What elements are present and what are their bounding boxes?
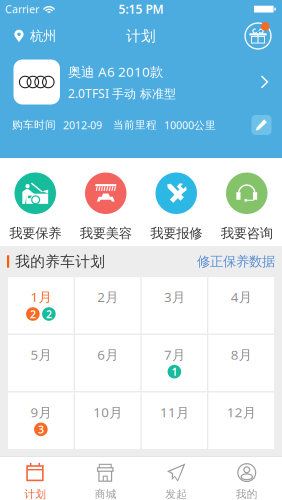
button[interactable]: 我要保养	[0, 158, 70, 246]
button[interactable]: 3月	[141, 277, 207, 334]
button[interactable]: 6月	[75, 335, 141, 391]
staticText: 我要美容	[80, 225, 132, 241]
staticText: 我要报修	[150, 225, 202, 241]
button[interactable]: 9月	[8, 392, 74, 449]
button[interactable]: 我要报修	[141, 158, 211, 246]
button[interactable]: 我要美容	[70, 158, 141, 246]
button[interactable]: 我要咨询	[211, 158, 282, 246]
staticText: 发起	[165, 488, 187, 500]
staticText: 当前里程	[113, 118, 157, 131]
staticText: 购车时间	[12, 118, 56, 131]
staticText: 12月	[227, 403, 256, 421]
staticText: 10月	[93, 403, 122, 421]
button[interactable]: 商城	[70, 457, 141, 500]
staticText: 2012-09	[63, 118, 102, 132]
staticText: 5月	[30, 346, 51, 363]
button[interactable]: 8月	[208, 335, 274, 391]
staticText: 8月	[231, 346, 252, 363]
staticText: 修正保养数据	[197, 253, 275, 270]
button[interactable]: 我的	[211, 457, 282, 500]
staticText: 2月	[97, 288, 118, 306]
button[interactable]: 礼物	[232, 18, 282, 54]
staticText: 1	[171, 365, 177, 379]
button[interactable]: 计划	[0, 457, 70, 500]
button[interactable]: 编辑	[251, 115, 271, 135]
button[interactable]: 10月	[75, 392, 141, 449]
staticText: 2	[46, 307, 52, 321]
staticText: 商城	[95, 488, 117, 500]
button[interactable]: 杭州	[0, 18, 66, 54]
staticText: 计划	[24, 488, 46, 500]
staticText: 我的养车计划	[15, 252, 105, 270]
staticText: 我要咨询	[221, 225, 273, 241]
staticText: 3月	[164, 288, 185, 306]
staticText: 9月	[30, 403, 51, 421]
staticText: 我要保养	[9, 225, 61, 241]
button[interactable]: 2月	[75, 277, 141, 334]
button[interactable]: 修正保养数据	[190, 247, 282, 276]
staticText: 5:15 PM	[118, 1, 163, 17]
button[interactable]: 4月	[208, 277, 274, 334]
staticText: 3	[38, 422, 44, 436]
button[interactable]: 发起	[141, 457, 211, 500]
staticText: 2	[30, 307, 36, 321]
staticText: 10000公里	[164, 118, 216, 132]
staticText: 杭州	[30, 28, 56, 44]
staticText: 4月	[231, 288, 252, 306]
staticText: 计划	[126, 27, 156, 45]
staticText: 奥迪 A6 2010款	[68, 63, 163, 80]
staticText: 7月	[164, 346, 185, 363]
staticText: 11月	[160, 403, 189, 421]
staticText: 1月	[30, 288, 51, 306]
staticText: 6月	[97, 346, 118, 363]
button[interactable]: 7月	[141, 335, 207, 391]
button[interactable]: 11月	[141, 392, 207, 449]
staticText: 我的	[236, 488, 258, 500]
staticText: Carrier	[5, 2, 39, 16]
button[interactable]: 1月	[8, 277, 74, 334]
button[interactable]: 12月	[208, 392, 274, 449]
button[interactable]: 奥迪 A6 2010款	[0, 54, 282, 110]
staticText: 2.0TFSI 手动 标准型	[68, 85, 176, 101]
button[interactable]: 5月	[8, 335, 74, 391]
